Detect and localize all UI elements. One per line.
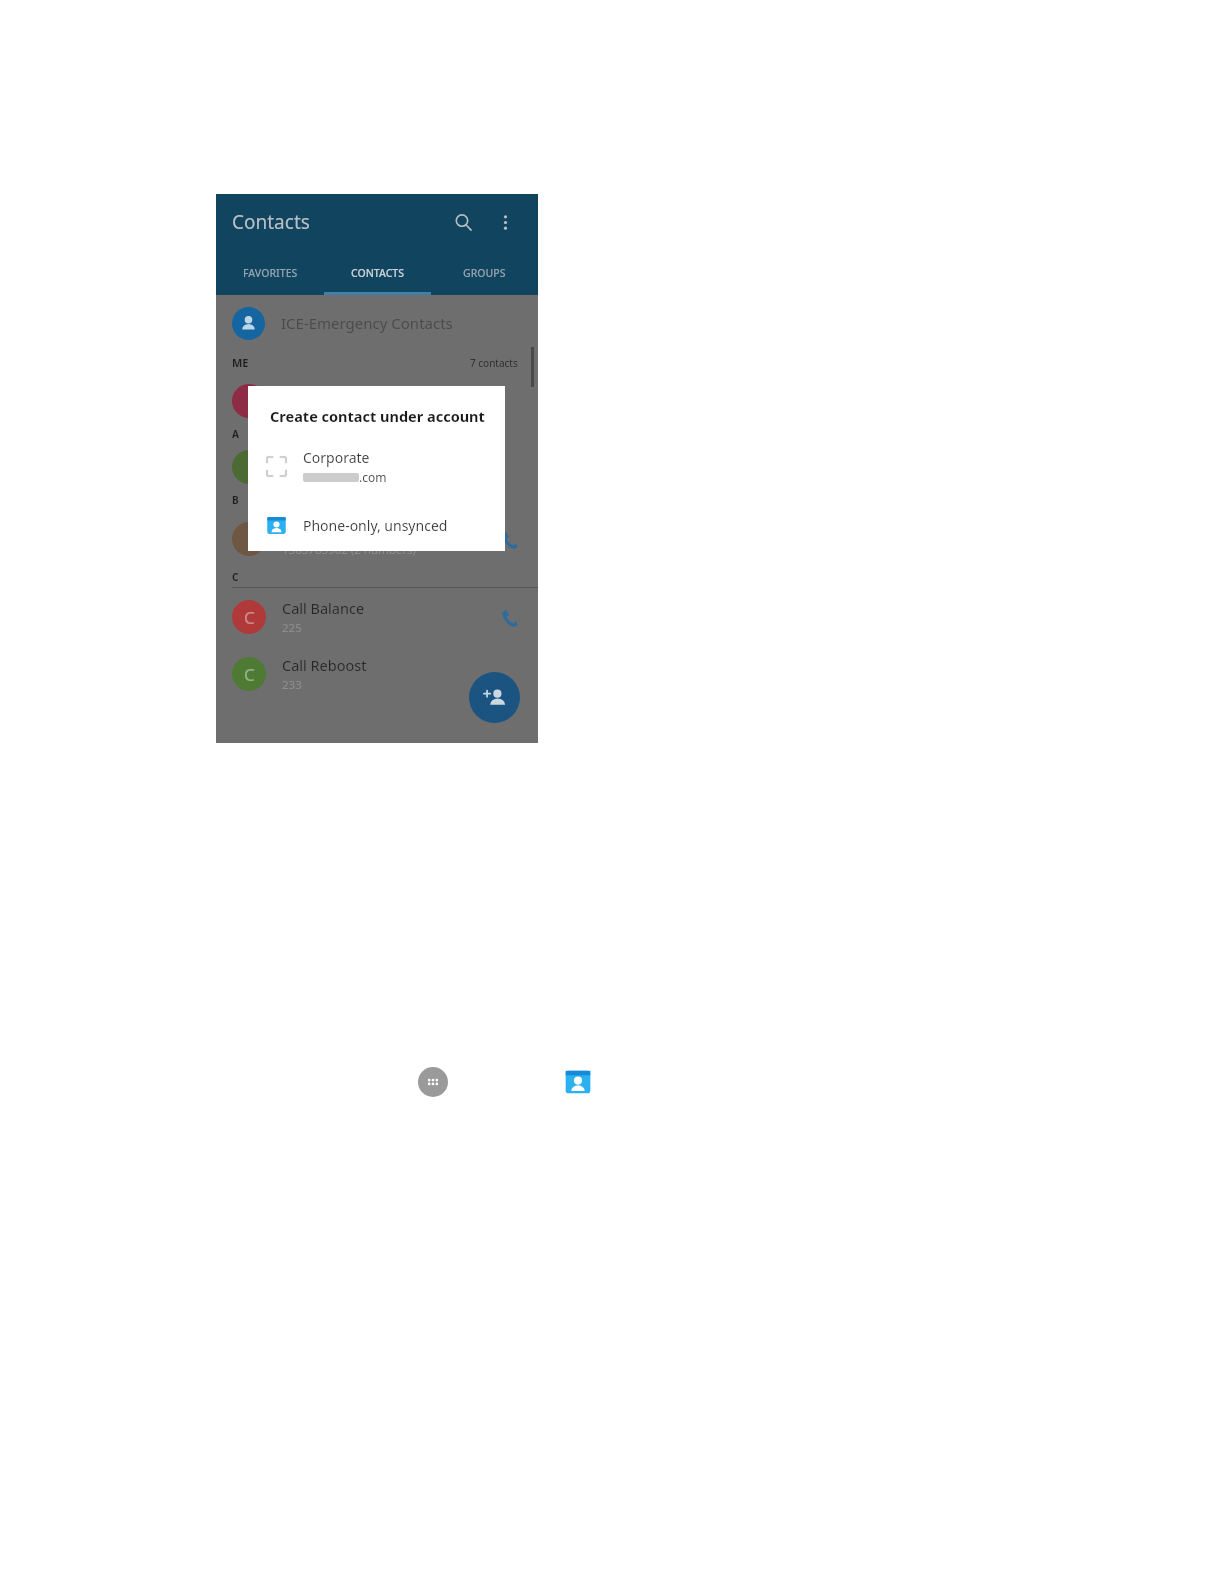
button[interactable]: GROUPS — [431, 250, 538, 295]
button[interactable] — [216, 444, 538, 490]
staticText: 1365785962 (2 numbers) — [282, 542, 417, 558]
staticText: C — [232, 570, 239, 584]
staticText: .com — [359, 469, 387, 485]
button[interactable]: ICE-Emergency Contacts — [216, 295, 538, 351]
staticText: GROUPS — [463, 266, 506, 280]
button[interactable]: Brian Carter — [216, 510, 538, 567]
button[interactable]: Search — [446, 205, 480, 239]
button[interactable]: CONTACTS — [324, 250, 431, 295]
staticText: FAVORITES — [243, 266, 298, 280]
staticText: Create contact under account — [270, 406, 485, 426]
button[interactable]: Call Brian Carter — [494, 524, 524, 554]
staticText: A — [232, 427, 239, 441]
button[interactable]: Call Call Balance — [494, 602, 524, 632]
staticText: ME — [232, 355, 249, 370]
staticText: 225 — [282, 620, 302, 636]
staticText: B — [232, 493, 239, 507]
staticText: Call Reboost — [282, 655, 367, 675]
button[interactable]: Add contact — [469, 672, 520, 723]
button[interactable]: More options — [488, 205, 522, 239]
staticText: Phone-only, unsynced — [303, 516, 448, 535]
staticText: C — [244, 663, 255, 686]
staticText: Contacts — [232, 209, 310, 235]
staticText: 233 — [282, 677, 302, 693]
button[interactable] — [216, 378, 538, 424]
staticText: 7 contacts — [470, 356, 518, 370]
staticText: Brian Carter — [282, 520, 365, 540]
button[interactable]: All apps — [418, 1067, 448, 1097]
staticText: CONTACTS — [351, 266, 405, 280]
button[interactable]: Contacts app — [563, 1067, 593, 1097]
staticText: Corporate — [303, 448, 370, 467]
button[interactable]: C — [216, 645, 538, 702]
staticText: Call Balance — [282, 598, 365, 618]
button[interactable]: FAVORITES — [216, 250, 324, 295]
button[interactable]: Corporate — [248, 441, 505, 491]
staticText: ICE-Emergency Contacts — [281, 313, 453, 333]
button[interactable]: C — [216, 588, 538, 645]
staticText: C — [244, 606, 255, 629]
button[interactable]: Phone-only, unsynced — [248, 505, 505, 545]
